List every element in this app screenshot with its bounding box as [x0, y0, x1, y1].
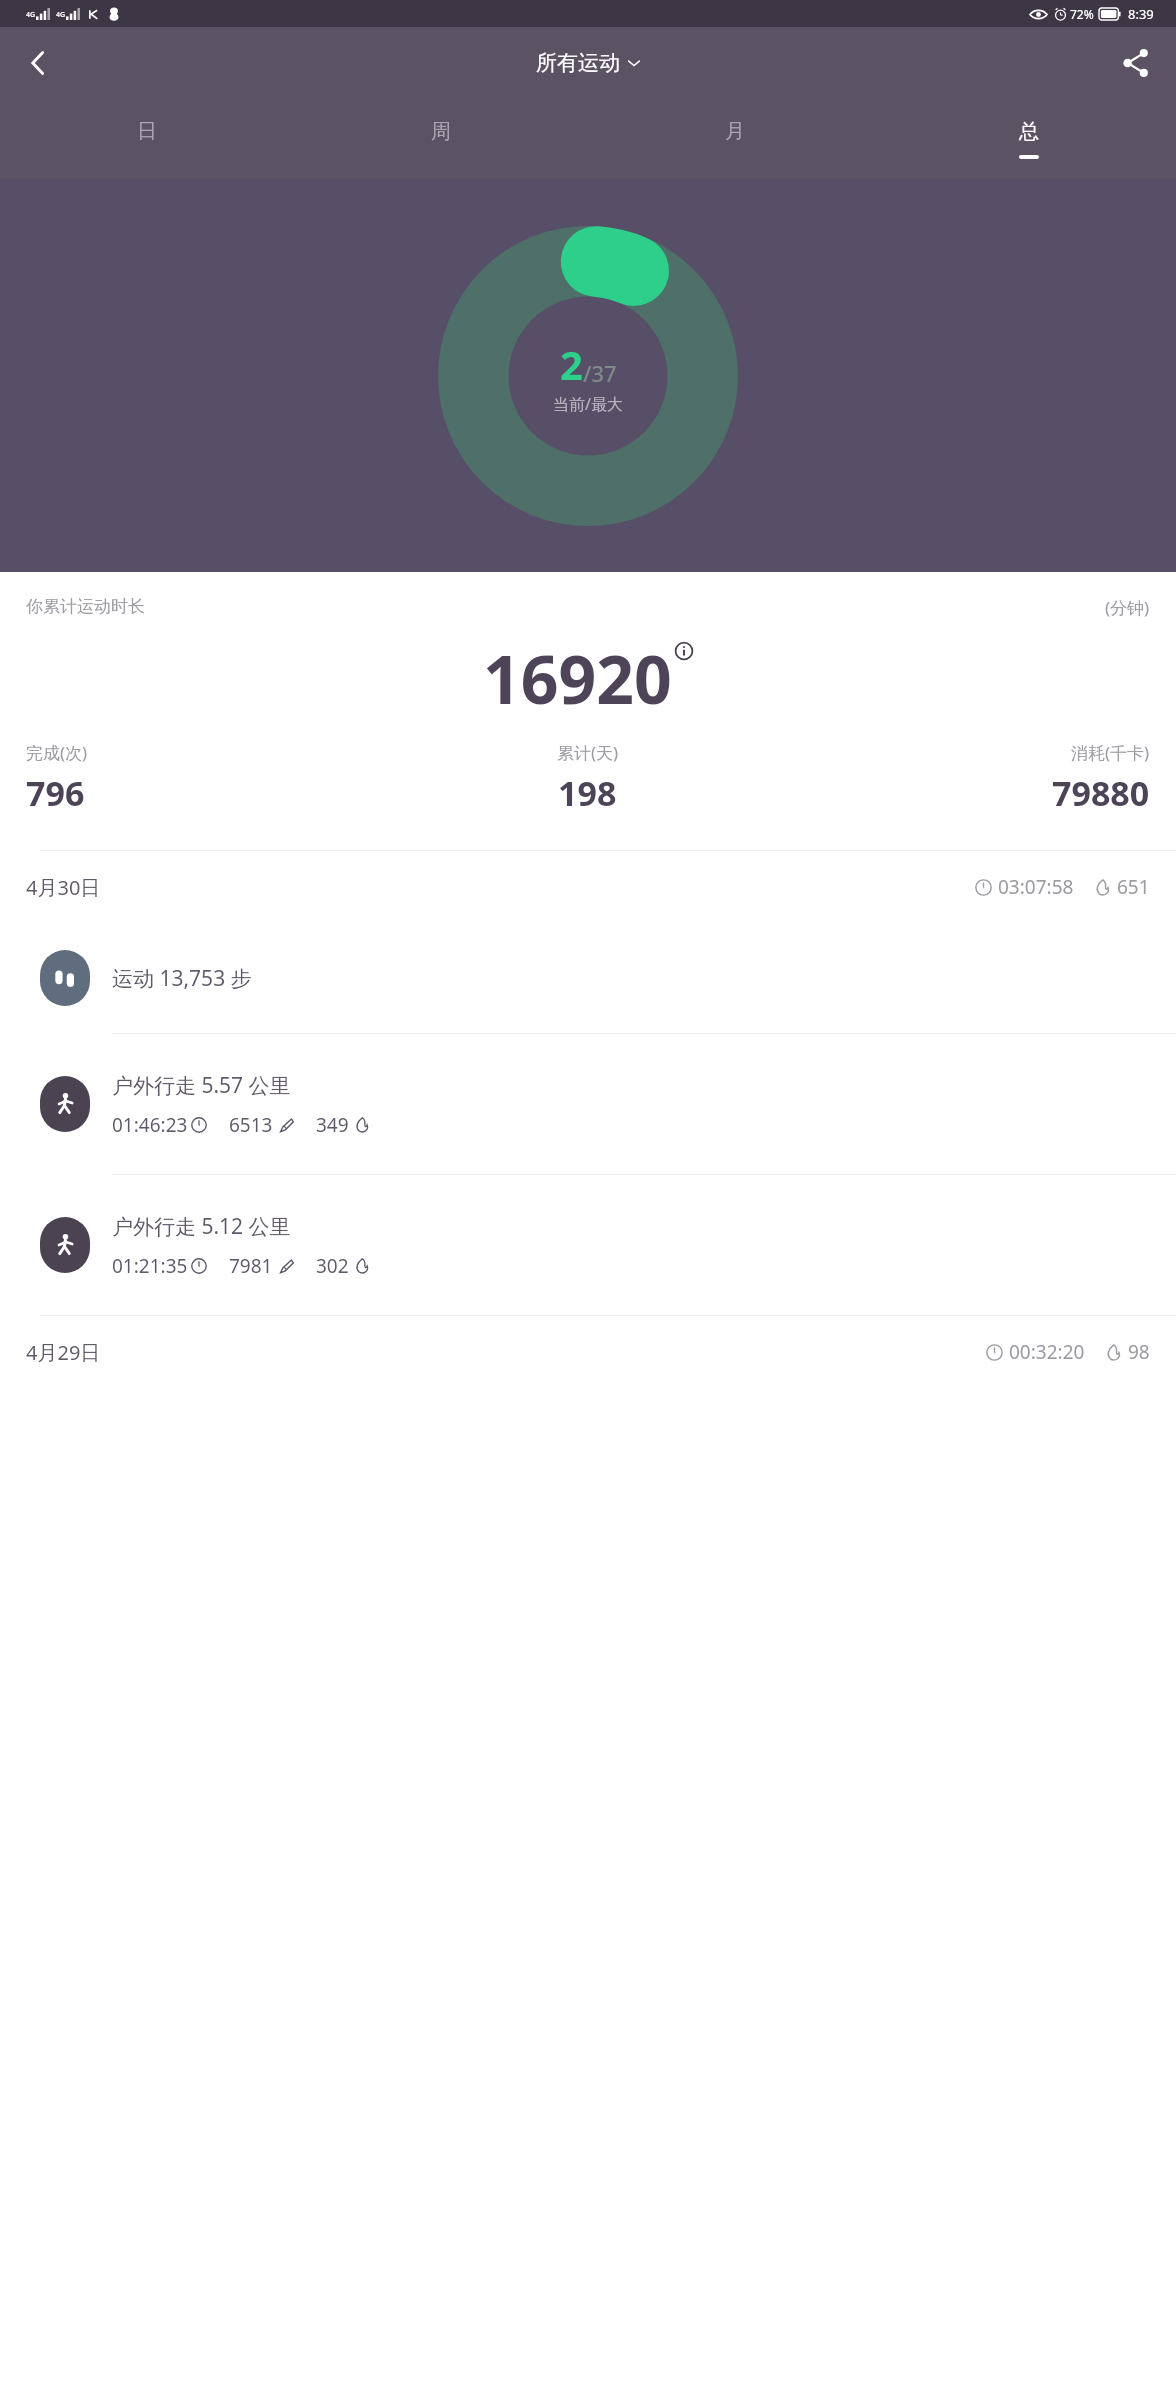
button[interactable]: 日: [0, 99, 294, 179]
staticText: 16920: [483, 633, 672, 723]
staticText: 796: [26, 770, 85, 816]
staticText: 00:32:20: [1009, 1339, 1085, 1365]
staticText: 198: [558, 770, 617, 816]
button[interactable]: 月: [588, 99, 882, 179]
staticText: 累计(天): [557, 741, 619, 764]
staticText: 4G: [56, 10, 66, 20]
staticText: (分钟): [1105, 596, 1150, 619]
button[interactable]: Share: [1108, 35, 1164, 91]
staticText: 你累计运动时长: [26, 596, 145, 617]
staticText: 完成(次): [26, 741, 88, 764]
staticText: 4月29日: [26, 1339, 101, 1366]
button[interactable]: 户外行走 5.12 公里: [0, 1175, 1176, 1315]
staticText: 79880: [1052, 770, 1150, 816]
staticText: 01:46:23: [112, 1112, 188, 1138]
staticText: 01:21:35: [112, 1253, 188, 1279]
staticText: 349: [316, 1112, 349, 1138]
button[interactable]: 周: [294, 99, 588, 179]
staticText: 2: [560, 337, 583, 391]
staticText: 4月30日: [26, 874, 101, 901]
staticText: 8:39: [1128, 5, 1154, 23]
button[interactable]: 运动 13,753 步: [0, 923, 1176, 1033]
button[interactable]: 户外行走 5.57 公里: [0, 1034, 1176, 1174]
staticText: 98: [1128, 1339, 1150, 1365]
staticText: 7981: [229, 1253, 273, 1279]
staticText: 03:07:58: [998, 874, 1074, 900]
staticText: 户外行走 5.57 公里: [112, 1071, 291, 1100]
staticText: 72%: [1070, 6, 1094, 22]
staticText: 周: [431, 119, 451, 144]
staticText: 4G: [26, 10, 36, 20]
staticText: /37: [583, 358, 617, 388]
staticText: 运动 13,753 步: [112, 964, 252, 993]
staticText: 所有运动: [536, 50, 620, 76]
staticText: 消耗(千卡): [1071, 741, 1150, 764]
button[interactable]: 所有运动: [536, 50, 641, 76]
staticText: 651: [1117, 874, 1150, 900]
button[interactable]: Info: [674, 641, 694, 661]
staticText: 月: [725, 119, 745, 144]
staticText: 户外行走 5.12 公里: [112, 1212, 291, 1241]
staticText: 当前/最大: [553, 393, 623, 415]
staticText: 6513: [229, 1112, 273, 1138]
staticText: 总: [1019, 119, 1039, 144]
staticText: 日: [137, 119, 157, 144]
button[interactable]: 总: [882, 99, 1176, 179]
button[interactable]: Back: [10, 35, 66, 91]
staticText: 302: [316, 1253, 349, 1279]
